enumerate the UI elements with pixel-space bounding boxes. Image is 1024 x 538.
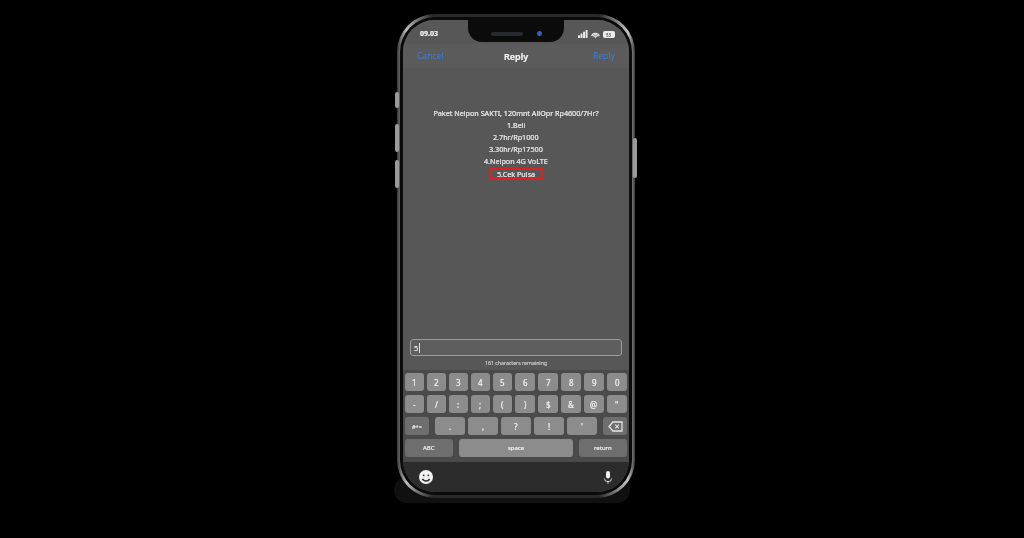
button[interactable]: &	[561, 395, 581, 413]
staticText: !	[548, 421, 551, 432]
staticText: 09.03	[420, 29, 438, 39]
staticText: 9	[592, 377, 597, 388]
staticText: 6	[523, 377, 528, 388]
staticText: 3.30hr/Rp17500	[489, 144, 543, 154]
button[interactable]: Microphone	[603, 470, 613, 485]
staticText: :	[457, 399, 460, 410]
staticText: )	[524, 399, 527, 410]
button[interactable]: 8	[561, 373, 581, 391]
button[interactable]: 0	[607, 373, 627, 391]
button[interactable]: 2	[427, 373, 446, 391]
button[interactable]: Emoji	[419, 470, 433, 484]
staticText: 7	[546, 377, 551, 388]
button[interactable]: return	[579, 439, 627, 457]
button[interactable]: #+=	[405, 417, 429, 435]
staticText: return	[594, 444, 612, 452]
button[interactable]: (	[493, 395, 512, 413]
staticText: "	[615, 399, 619, 410]
button[interactable]: 6	[515, 373, 535, 391]
staticText: @	[590, 399, 598, 410]
staticText: 8	[569, 377, 574, 388]
button[interactable]: space	[459, 439, 573, 457]
button[interactable]: '	[567, 417, 597, 435]
button[interactable]: "	[607, 395, 627, 413]
button[interactable]: !	[534, 417, 564, 435]
button[interactable]: Reply	[579, 46, 629, 66]
button[interactable]: Cancel	[403, 46, 458, 66]
staticText: space	[508, 444, 525, 452]
staticText: '	[581, 421, 583, 432]
staticText: 3	[456, 377, 461, 388]
staticText: #+=	[412, 423, 422, 430]
staticText: ?	[514, 421, 518, 432]
staticText: 2	[434, 377, 439, 388]
staticText: &	[568, 399, 574, 410]
staticText: ,	[482, 421, 485, 432]
button[interactable]: @	[584, 395, 604, 413]
button[interactable]: /	[427, 395, 446, 413]
staticText: 5.Cek Pulsa	[497, 169, 536, 179]
staticText: /	[435, 399, 438, 410]
staticText: ;	[479, 399, 482, 410]
button[interactable]: Backspace	[603, 417, 627, 435]
staticText: 0	[615, 377, 620, 388]
button[interactable]: 5	[410, 339, 622, 356]
staticText: -	[413, 399, 416, 410]
staticText: 2.7hr/Rp1000	[493, 132, 539, 142]
staticText: 161 characters remaining	[485, 359, 548, 366]
button[interactable]: ;	[471, 395, 490, 413]
staticText: 4	[478, 377, 483, 388]
button[interactable]: 7	[538, 373, 558, 391]
button[interactable]: ABC	[405, 439, 453, 457]
button[interactable]: ?	[501, 417, 531, 435]
button[interactable]: -	[405, 395, 424, 413]
button[interactable]: $	[538, 395, 558, 413]
staticText: 1.Beli	[507, 120, 526, 130]
button[interactable]: 9	[584, 373, 604, 391]
staticText: $	[546, 399, 551, 410]
staticText: 5	[414, 343, 419, 353]
staticText: Reply	[504, 50, 529, 62]
button[interactable]: )	[515, 395, 535, 413]
button[interactable]: 5	[493, 373, 512, 391]
staticText: Paket Nelpon SAKTI, 120mnt AllOpr Rp4600…	[433, 108, 599, 118]
staticText: (	[501, 399, 504, 410]
staticText: 1	[412, 377, 417, 388]
button[interactable]: 1	[405, 373, 424, 391]
staticText: 5	[500, 377, 505, 388]
staticText: 4.Nelpon 4G VoLTE	[484, 156, 548, 166]
staticText: ABC	[423, 444, 435, 452]
button[interactable]: ,	[468, 417, 498, 435]
button[interactable]: 4	[471, 373, 490, 391]
staticText: .	[449, 421, 452, 432]
staticText: Cancel	[417, 50, 444, 62]
button[interactable]: .	[435, 417, 465, 435]
button[interactable]: 3	[449, 373, 468, 391]
staticText: Reply	[593, 50, 615, 62]
staticText: 53	[606, 32, 612, 38]
button[interactable]: :	[449, 395, 468, 413]
